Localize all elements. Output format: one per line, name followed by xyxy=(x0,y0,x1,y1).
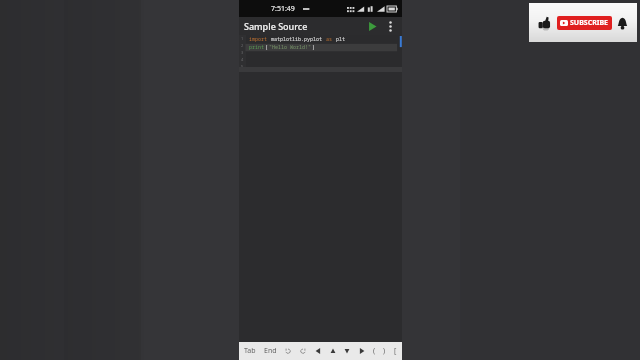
staticText: Tab xyxy=(244,346,256,356)
button[interactable]: Right xyxy=(356,342,367,360)
staticText: plt xyxy=(333,36,346,43)
staticText: ) xyxy=(312,44,316,51)
staticText: Sample Source xyxy=(244,20,308,32)
staticText: import xyxy=(249,36,268,43)
staticText: ( xyxy=(265,44,269,51)
button[interactable]: Subscribe xyxy=(529,3,637,42)
staticText: End xyxy=(264,346,277,356)
staticText: print xyxy=(249,44,265,51)
staticText: SUBSCRIBE xyxy=(570,18,609,28)
staticText: 1 xyxy=(241,36,244,41)
button[interactable]: End xyxy=(264,342,277,360)
staticText: ) xyxy=(383,346,386,356)
staticText: 7:51:49 xyxy=(271,4,295,14)
button[interactable]: ) xyxy=(383,342,386,360)
staticText: [ xyxy=(394,346,397,356)
staticText: as xyxy=(323,36,333,43)
staticText: matplotlib.pyplot xyxy=(268,36,323,43)
button[interactable]: Redo xyxy=(297,342,308,360)
staticText: 3 xyxy=(241,50,244,55)
staticText: 4 xyxy=(241,57,244,62)
button[interactable]: ( xyxy=(373,342,376,360)
staticText: 2 xyxy=(241,43,244,48)
staticText: "Hello World!" xyxy=(269,44,312,51)
staticText: 5 xyxy=(241,64,244,69)
button[interactable]: Up xyxy=(327,342,338,360)
button[interactable]: Down xyxy=(341,342,352,360)
button[interactable]: Undo xyxy=(282,342,293,360)
staticText: ( xyxy=(373,346,376,356)
button[interactable]: Left xyxy=(312,342,323,360)
button[interactable]: Tab xyxy=(244,342,256,360)
button[interactable]: [ xyxy=(394,342,397,360)
button[interactable]: More options xyxy=(383,19,397,33)
button[interactable]: Run xyxy=(365,19,379,33)
